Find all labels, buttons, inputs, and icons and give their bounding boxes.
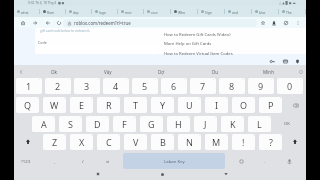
button[interactable]: B — [151, 134, 174, 150]
button[interactable]: T — [124, 97, 147, 113]
button[interactable]: O — [232, 97, 255, 113]
button[interactable]: Back — [30, 17, 40, 28]
button[interactable]: Wha — [171, 7, 197, 16]
button[interactable]: N — [178, 134, 201, 150]
button[interactable]: J — [194, 116, 217, 132]
button[interactable]: dsp — [66, 7, 91, 16]
staticText: Minh — [263, 69, 275, 75]
button[interactable]: 6 — [161, 78, 187, 94]
button[interactable]: How to Redeem Gift Cards (Video) — [164, 31, 231, 38]
button[interactable]: R — [97, 97, 120, 113]
button[interactable]: K — [221, 116, 244, 132]
button[interactable]: Extensions — [281, 17, 291, 28]
staticText: ˋ — [213, 79, 214, 83]
button[interactable]: Minh — [242, 65, 296, 78]
button[interactable]: Dợ — [134, 65, 188, 78]
button[interactable]: S — [59, 116, 82, 132]
button[interactable]: Emoji — [233, 153, 249, 169]
staticText: Y — [160, 99, 166, 111]
button[interactable]: A — [32, 116, 55, 132]
button[interactable]: ! — [232, 134, 255, 150]
button[interactable]: Back — [84, 168, 112, 180]
staticText: ˋ — [184, 79, 185, 83]
button[interactable]: 3 — [74, 78, 100, 94]
button[interactable]: Vày — [81, 65, 134, 78]
button[interactable]: ? — [259, 134, 282, 150]
button[interactable]: Rom — [40, 7, 65, 16]
button[interactable]: 4 — [103, 78, 129, 94]
button[interactable]: and — [225, 7, 251, 16]
button[interactable]: blac — [252, 7, 278, 16]
button[interactable]: OK — [273, 116, 300, 132]
staticText: Ok — [51, 69, 58, 75]
button[interactable]: micr — [118, 7, 143, 16]
button[interactable]: vi — [100, 153, 116, 169]
button[interactable]: Bookmark — [258, 17, 268, 28]
button[interactable]: W — [43, 97, 66, 113]
button[interactable]: / — [75, 153, 91, 169]
button[interactable]: BKSP — [284, 97, 306, 113]
button[interactable]: The — [279, 7, 305, 16]
staticText: ˋ — [64, 135, 65, 139]
button[interactable]: 7 — [190, 78, 216, 94]
staticText: Rom — [47, 10, 55, 14]
button[interactable]: Previous suggestions — [14, 65, 28, 78]
staticText: △ ▲ ▉ ● ▬ — [279, 1, 296, 5]
button[interactable]: Password manager — [268, 57, 276, 65]
button[interactable]: cour — [144, 7, 170, 16]
button[interactable]: Y — [151, 97, 174, 113]
button[interactable]: logo — [92, 7, 117, 16]
button[interactable]: Downloads — [269, 17, 279, 28]
button[interactable]: G — [140, 116, 163, 132]
button[interactable]: V — [124, 134, 147, 150]
button[interactable]: More suggestions — [296, 65, 306, 78]
button[interactable]: L — [248, 116, 271, 132]
button[interactable]: whai — [14, 7, 39, 16]
button[interactable]: Z — [43, 134, 66, 150]
button[interactable]: M — [205, 134, 228, 150]
button[interactable]: SHIFT — [14, 134, 41, 150]
button[interactable]: Laban Key — [123, 153, 225, 169]
button[interactable]: Forward — [43, 17, 53, 28]
button[interactable]: 9 — [248, 78, 274, 94]
button[interactable]: F — [113, 116, 136, 132]
button[interactable]: 0 — [277, 78, 303, 94]
button[interactable]: Du — [188, 65, 242, 78]
button[interactable]: Reload — [54, 17, 64, 28]
staticText: P — [268, 99, 274, 111]
staticText: dsp — [73, 10, 79, 14]
button[interactable]: Home — [18, 17, 28, 28]
button[interactable]: 5 — [132, 78, 158, 94]
button[interactable]: 8 — [219, 78, 245, 94]
button[interactable]: How to Redeem Virtual Item Codes — [164, 50, 233, 57]
button[interactable]: D — [86, 116, 109, 132]
button[interactable]: roblox.com/redeem?rl=true — [63, 19, 257, 27]
button[interactable]: U — [178, 97, 201, 113]
button[interactable]: Ok — [28, 65, 81, 78]
button[interactable]: More Help on Gift Cards — [164, 40, 212, 47]
button[interactable]: H — [167, 116, 190, 132]
button[interactable]: SHIFT — [284, 134, 306, 150]
button[interactable]: ?123 — [18, 153, 34, 169]
button[interactable]: More options — [293, 17, 303, 28]
button[interactable]: E — [70, 97, 93, 113]
staticText: ˋ — [145, 98, 146, 102]
button[interactable]: Q — [16, 97, 39, 113]
button[interactable]: 1 — [16, 78, 42, 94]
button[interactable]: X — [70, 134, 93, 150]
button[interactable]: P — [259, 97, 282, 113]
staticText: ˋ — [172, 98, 173, 102]
button[interactable]: Voice input — [281, 153, 297, 169]
button[interactable]: I — [205, 97, 228, 113]
button[interactable]: Sign — [198, 7, 224, 16]
button[interactable]: 2 — [45, 78, 71, 94]
staticText: micr — [125, 10, 132, 14]
button[interactable]: Payment methods — [281, 57, 289, 65]
button[interactable]: Addresses — [293, 57, 301, 65]
button[interactable]: Recent apps — [212, 168, 240, 180]
button[interactable]: Home — [148, 168, 176, 180]
button[interactable]: C — [97, 134, 120, 150]
